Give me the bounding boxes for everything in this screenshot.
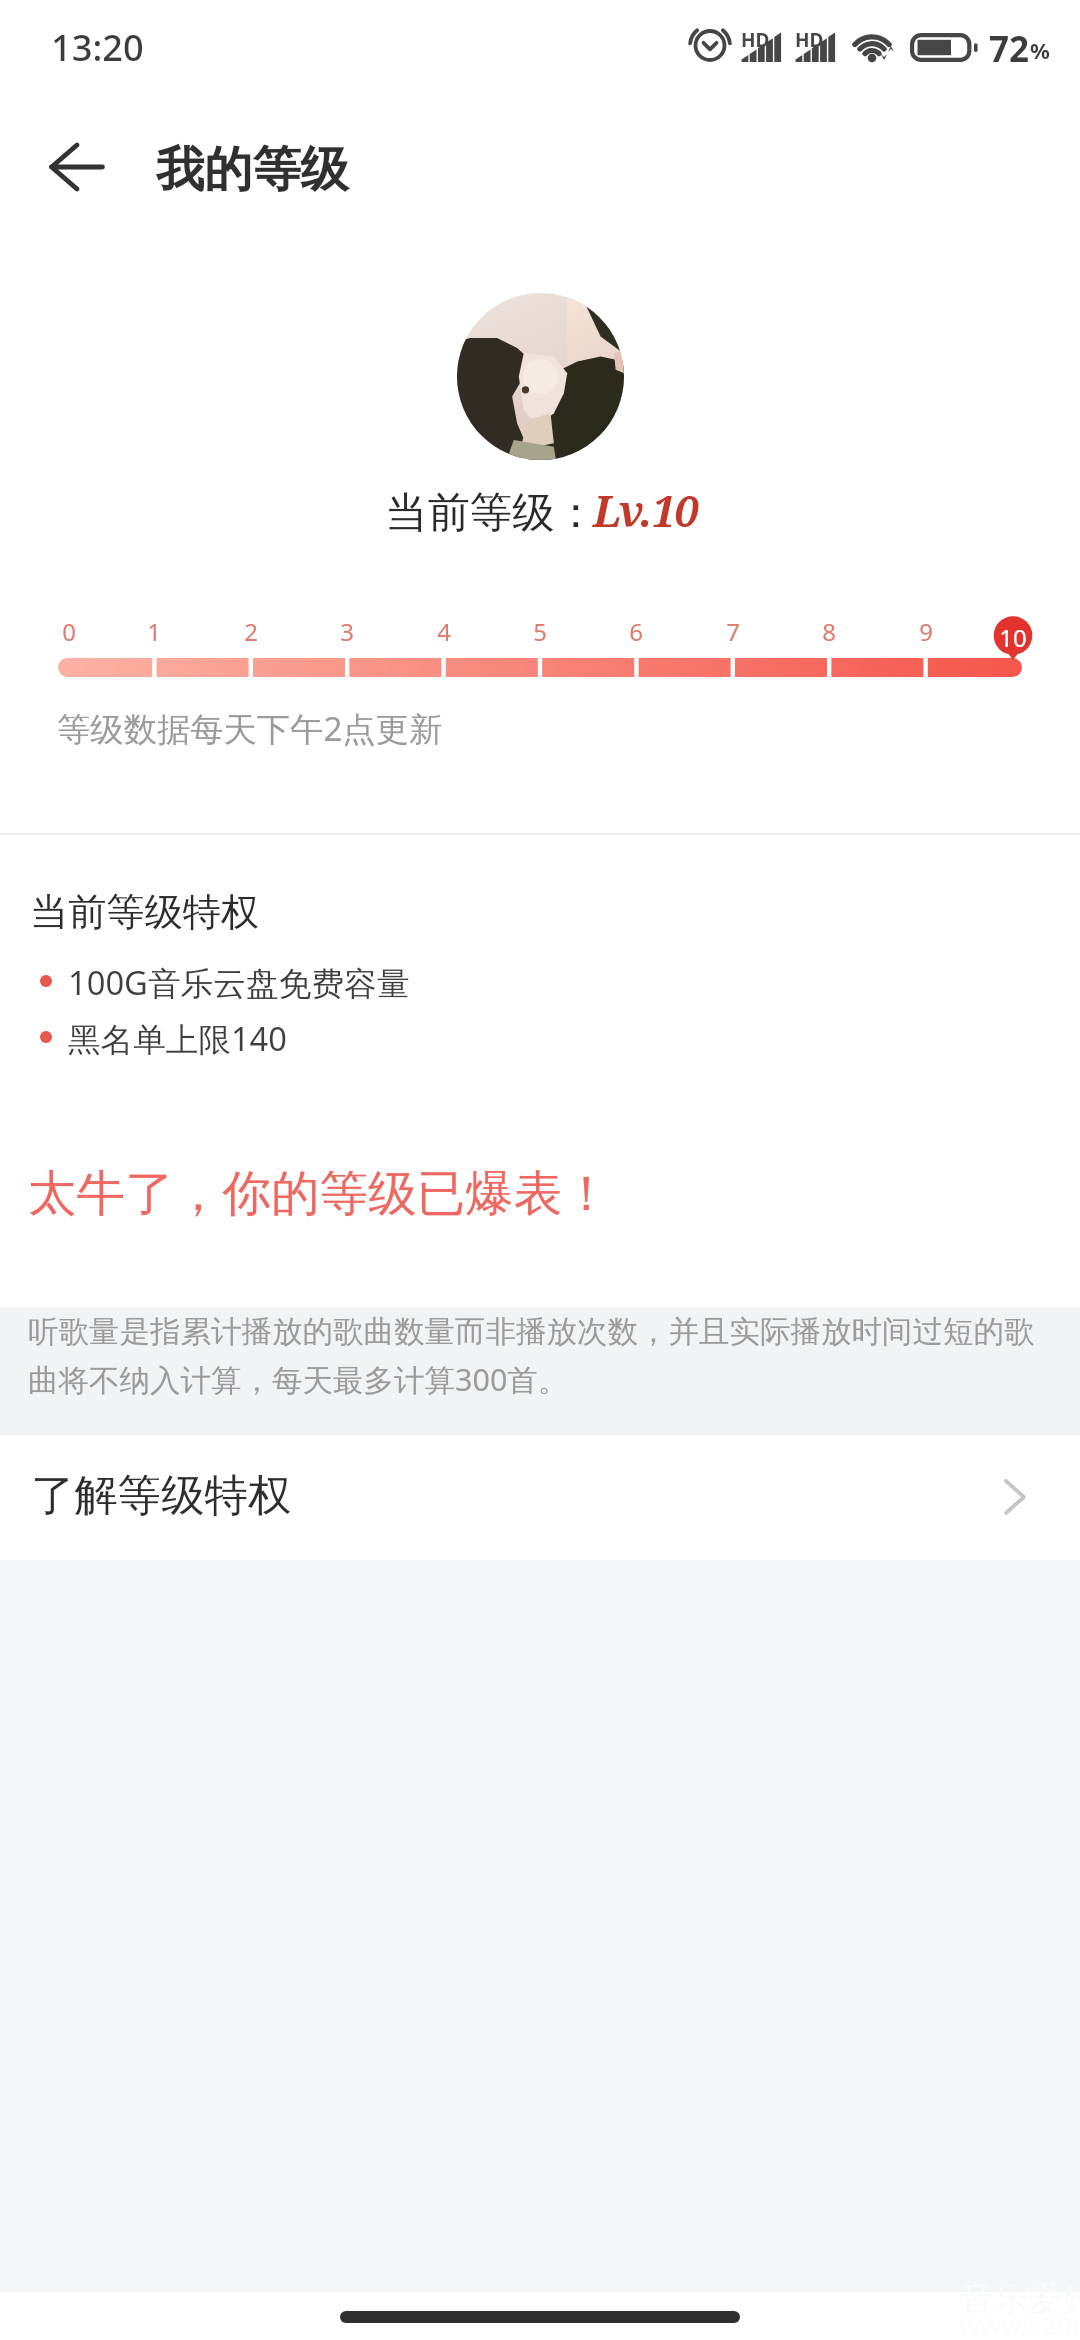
staticText: 听歌量是指累计播放的歌曲数量而非播放次数，并且实际播放时间过短的歌 曲将不纳入计… bbox=[28, 1313, 1080, 1400]
staticText: 0 bbox=[62, 615, 76, 648]
staticText: Lv.10 bbox=[593, 481, 698, 540]
staticText: HD bbox=[741, 27, 770, 53]
staticText: HD bbox=[795, 27, 824, 53]
staticText: 10 bbox=[999, 621, 1027, 654]
staticText: 太牛了，你的等级已爆表！ bbox=[28, 1163, 612, 1224]
button[interactable]: Back bbox=[22, 112, 132, 222]
other: 了解等级特权 bbox=[1004, 1479, 1026, 1515]
staticText: 13:20 bbox=[51, 22, 144, 71]
button[interactable] bbox=[0, 1435, 1080, 1560]
staticText: 2 bbox=[244, 615, 258, 648]
staticText: 当前等级特权 bbox=[30, 888, 260, 936]
staticText: 7 bbox=[726, 615, 740, 648]
button[interactable]: Avatar bbox=[457, 293, 624, 460]
staticText: 100G音乐云盘免费容量 bbox=[68, 960, 410, 1005]
staticText: 当前等级： bbox=[385, 486, 597, 539]
staticText: 4 bbox=[437, 615, 451, 648]
staticText: 黑名单上限140 bbox=[68, 1016, 287, 1061]
staticText: 音乐爱好者论坛 bbox=[960, 2277, 1080, 2320]
staticText: 72 bbox=[989, 25, 1030, 73]
staticText: 6 bbox=[629, 615, 643, 648]
staticText: 8 bbox=[822, 615, 836, 648]
staticText: 等级数据每天下午2点更新 bbox=[57, 705, 443, 750]
staticText: 5 bbox=[533, 615, 547, 648]
staticText: 了解等级特权 bbox=[31, 1468, 292, 1523]
staticText: 9 bbox=[919, 615, 933, 648]
staticText: 3 bbox=[340, 615, 354, 648]
staticText: 我的等级 bbox=[156, 140, 349, 201]
staticText: % bbox=[1030, 35, 1050, 65]
staticText: 1 bbox=[147, 615, 161, 648]
